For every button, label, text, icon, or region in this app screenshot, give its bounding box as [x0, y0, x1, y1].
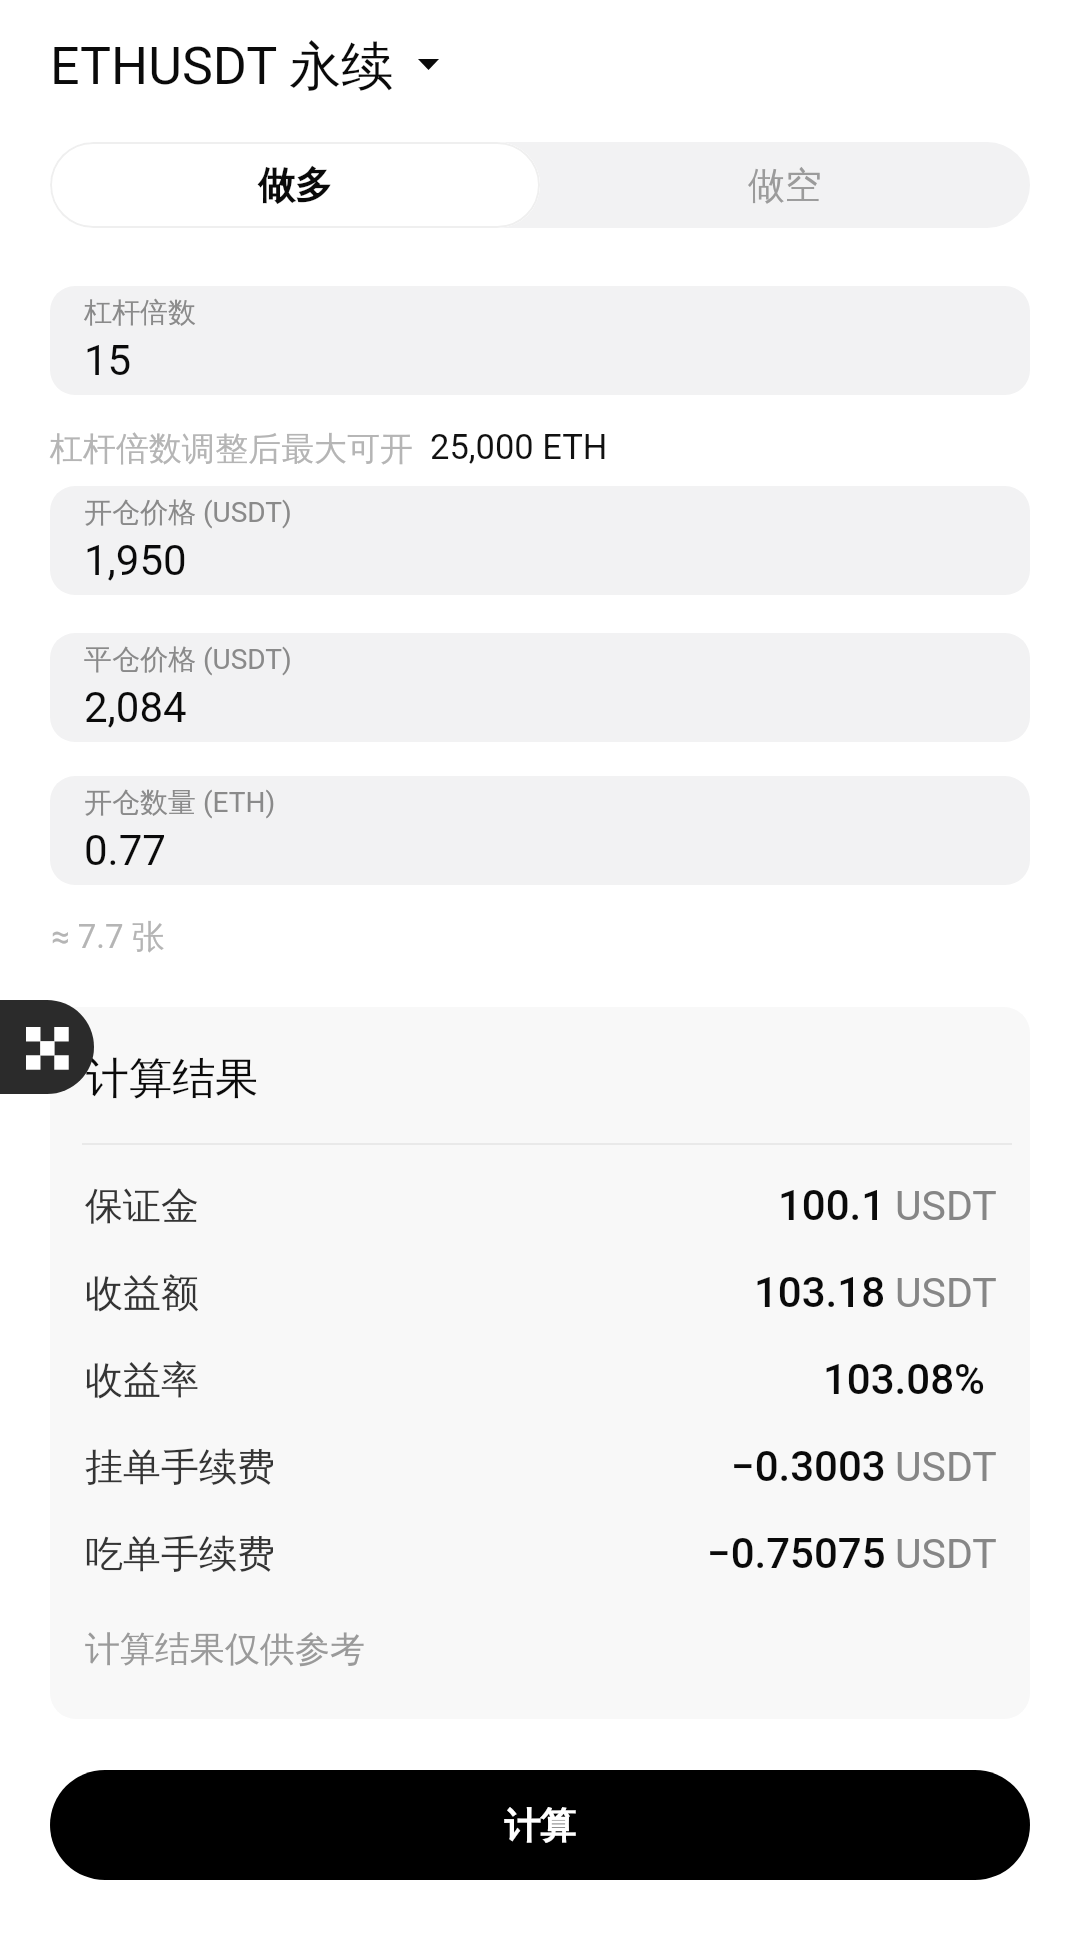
staticText: 15	[84, 336, 132, 385]
staticText: 开仓价格 (USDT)	[84, 495, 292, 530]
staticText: 做多	[258, 162, 332, 209]
staticText: USDT	[895, 1443, 997, 1491]
staticText: 计算	[504, 1803, 576, 1848]
staticText: −0.75075	[707, 1529, 886, 1578]
button[interactable]: 开仓数量 (ETH)	[50, 776, 1030, 885]
staticText: 收益额	[85, 1269, 199, 1317]
staticText: 做空	[748, 162, 822, 209]
staticText: 103.08%	[823, 1355, 985, 1404]
staticText: 25,000 ETH	[430, 427, 608, 467]
staticText: 2,084	[84, 683, 187, 732]
button[interactable]: 平仓价格 (USDT)	[50, 633, 1030, 742]
button[interactable]: 做空	[540, 142, 1030, 228]
staticText: 计算结果	[86, 1052, 258, 1106]
staticText: 挂单手续费	[85, 1443, 275, 1491]
staticText: 杠杆倍数	[84, 295, 196, 330]
staticText: 开仓数量 (ETH)	[84, 785, 276, 820]
staticText: 计算结果仅供参考	[85, 1627, 365, 1671]
button[interactable]: Open panel	[0, 1000, 94, 1094]
staticText: USDT	[895, 1530, 997, 1578]
button[interactable]: 杠杆倍数	[50, 286, 1030, 395]
staticText: 吃单手续费	[85, 1530, 275, 1578]
button[interactable]: 开仓价格 (USDT)	[50, 486, 1030, 595]
staticText: 保证金	[85, 1182, 199, 1230]
staticText: 平仓价格 (USDT)	[84, 642, 292, 677]
staticText: ≈ 7.7 张	[51, 916, 165, 958]
button[interactable]: 计算	[50, 1770, 1030, 1880]
staticText: USDT	[895, 1182, 997, 1230]
staticText: 100.1	[778, 1181, 886, 1230]
staticText: 1,950	[84, 536, 187, 585]
staticText: −0.3003	[731, 1442, 886, 1491]
staticText: 103.18	[754, 1268, 886, 1317]
staticText: ETHUSDT 永续	[50, 34, 394, 100]
button[interactable]: Select contract	[410, 46, 446, 82]
staticText: USDT	[895, 1269, 997, 1317]
staticText: 收益率	[85, 1356, 199, 1404]
button[interactable]: 做多	[50, 142, 540, 228]
staticText: 0.77	[84, 826, 166, 875]
staticText: 杠杆倍数调整后最大可开	[50, 428, 413, 470]
